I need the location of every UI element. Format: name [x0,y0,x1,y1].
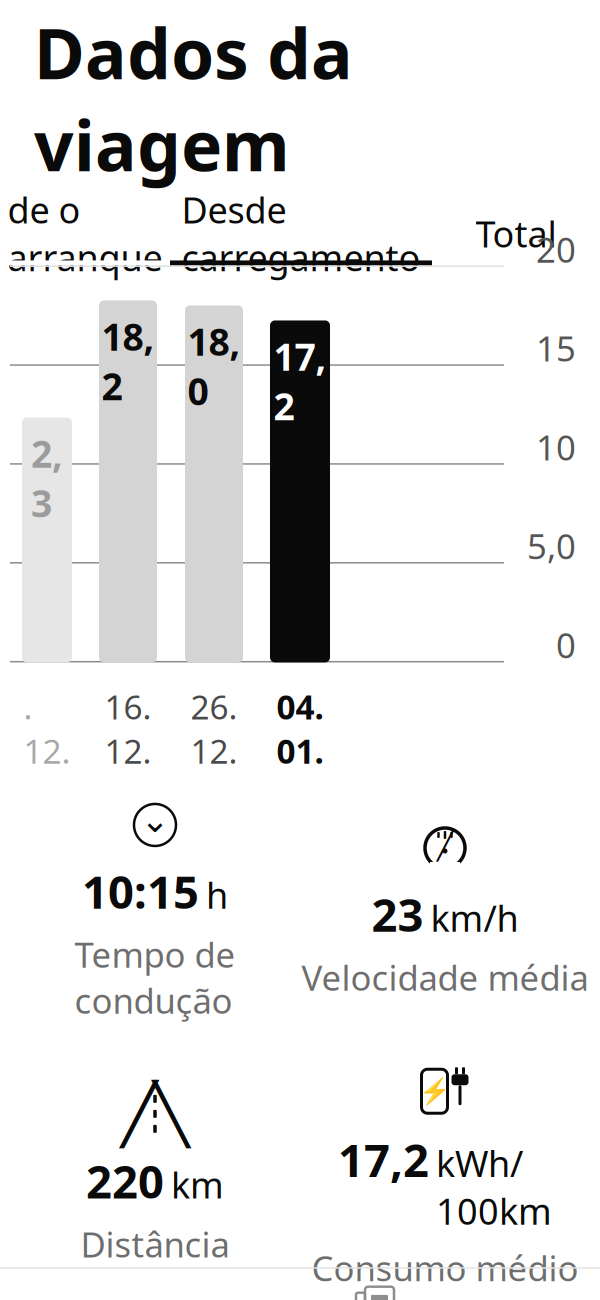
staticText: kWh/100km [436,1139,552,1235]
staticText: ╲ [153,1081,188,1147]
button[interactable]: Total [432,206,600,260]
staticText: 20 [536,226,576,272]
staticText: 04.01. [276,684,323,773]
staticText: 18,0 [187,316,240,416]
staticText: Desde carregamento [181,186,420,281]
staticText: ╱ [121,1081,156,1147]
staticText: Dados da viagem [34,6,353,190]
staticText: Velocidade média [301,954,588,1000]
staticText: km [171,1161,224,1208]
staticText: 2,3 [31,428,63,528]
button[interactable]: de o arranque [0,206,170,260]
staticText: km/h [430,894,518,942]
staticText: 5,0 [527,523,576,569]
staticText: 17,2 [273,331,326,431]
staticText: Total [475,209,556,257]
staticText: de o arranque [7,186,162,281]
staticText: h [206,871,228,919]
staticText: 17,2 [338,1129,429,1189]
staticText: 23 [371,884,423,944]
staticText: Tempo de condução [74,931,235,1023]
staticText: 220 [86,1151,164,1211]
staticText: 0 [556,622,576,668]
staticText: 10 [536,424,576,470]
staticText: 16.12. [104,684,151,773]
staticText: 26.12. [190,684,237,773]
button[interactable]: Descobrir [300,1269,450,1300]
staticText: ⚡ [418,1077,450,1106]
staticText: 15 [536,325,576,371]
staticText: 10:15 [82,861,199,921]
staticText: ╱ [437,831,453,861]
button[interactable]: Desde carregamento [170,206,432,260]
staticText: .12. [23,684,70,773]
staticText: Distância [80,1221,229,1267]
staticText: ⌄ [140,800,169,840]
staticText: Consumo médio [311,1245,578,1291]
staticText: 18,2 [101,311,154,411]
